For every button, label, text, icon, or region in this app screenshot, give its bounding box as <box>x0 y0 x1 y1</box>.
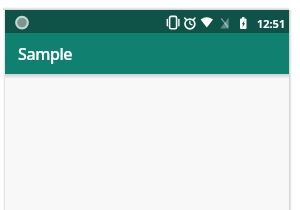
staticText: 12:51 <box>257 16 286 31</box>
button[interactable]: Sample <box>5 33 289 74</box>
staticText: Sample <box>18 43 73 65</box>
